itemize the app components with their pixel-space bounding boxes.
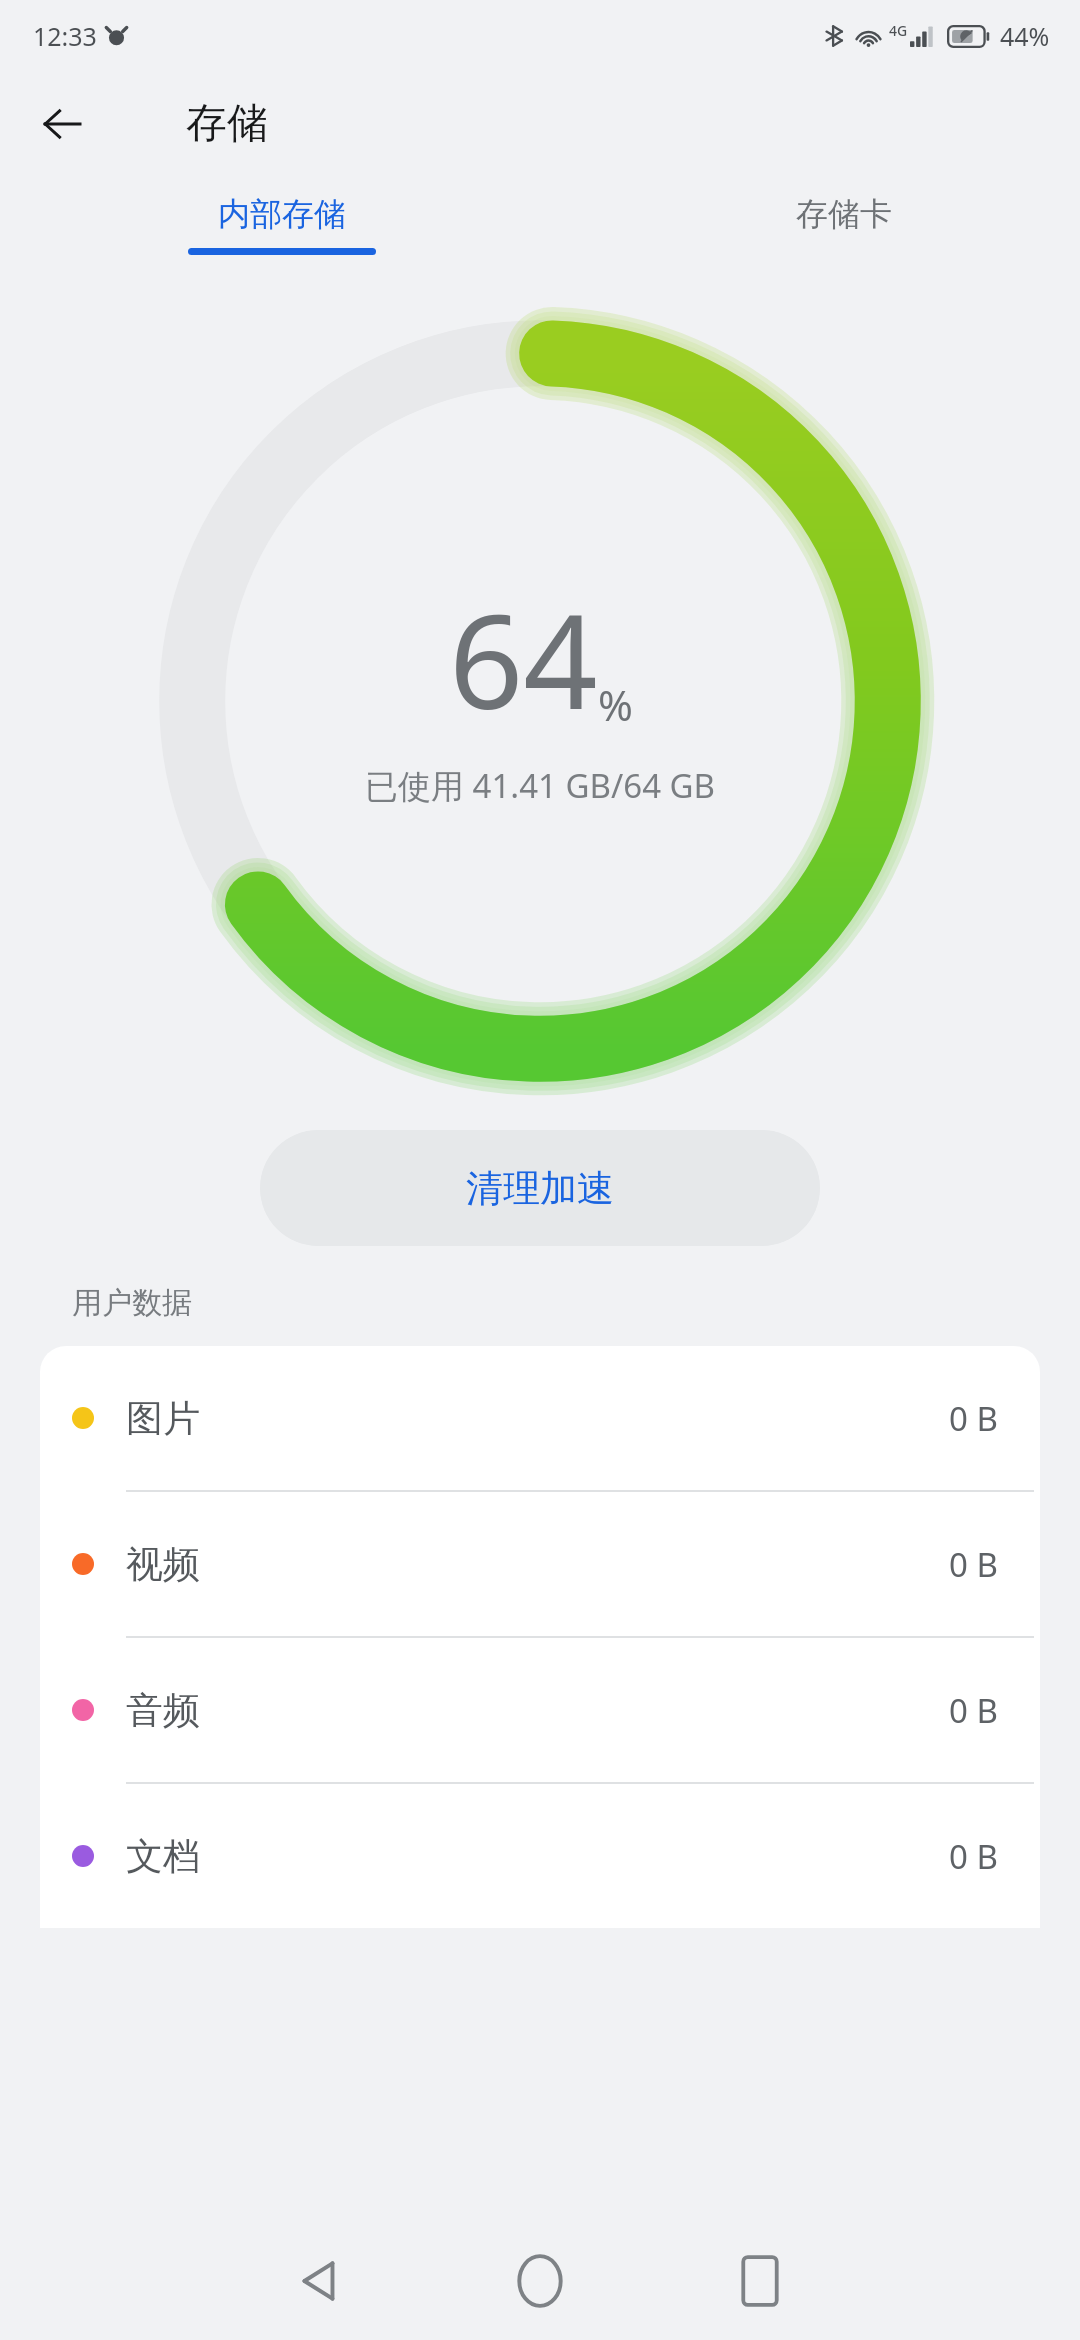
staticText: 0 B <box>949 1542 998 1587</box>
staticText: 0 B <box>949 1834 998 1879</box>
button[interactable]: Back <box>26 88 98 160</box>
button[interactable]: Recent apps <box>650 2222 870 2340</box>
staticText: 存储卡 <box>796 194 892 234</box>
staticText: 0 B <box>949 1396 998 1441</box>
button[interactable]: 视频 <box>40 1492 1040 1636</box>
staticText: 音频 <box>126 1687 200 1734</box>
button[interactable]: 音频 <box>40 1638 1040 1782</box>
button[interactable]: 清理加速 <box>260 1130 820 1246</box>
button[interactable]: Back <box>210 2222 430 2340</box>
staticText: 视频 <box>126 1541 200 1588</box>
staticText: 用户数据 <box>72 1284 192 1322</box>
staticText: % <box>598 676 633 733</box>
staticText: 44% <box>1000 19 1050 53</box>
staticText: 文档 <box>126 1833 200 1880</box>
button[interactable]: 存储卡 <box>788 176 900 248</box>
button[interactable]: 图片 <box>40 1346 1040 1490</box>
staticText: 已使用 41.41 GB/64 GB <box>365 763 716 808</box>
staticText: 图片 <box>126 1395 200 1442</box>
staticText: 存储 <box>186 98 268 150</box>
staticText: 4G <box>889 21 908 40</box>
staticText: 64 <box>449 570 598 747</box>
button[interactable]: 文档 <box>40 1784 1040 1928</box>
staticText: 0 B <box>949 1688 998 1733</box>
button[interactable]: 内部存储 <box>180 176 384 255</box>
staticText: 内部存储 <box>218 194 346 234</box>
staticText: 12:33 <box>33 19 97 53</box>
staticText: 清理加速 <box>466 1165 614 1212</box>
button[interactable]: Home <box>430 2222 650 2340</box>
